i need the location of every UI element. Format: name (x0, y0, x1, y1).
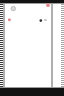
button[interactable]: Profile (10, 5, 17, 12)
button[interactable]: More (38, 18, 43, 23)
button[interactable]: Notifications (45, 2, 51, 8)
